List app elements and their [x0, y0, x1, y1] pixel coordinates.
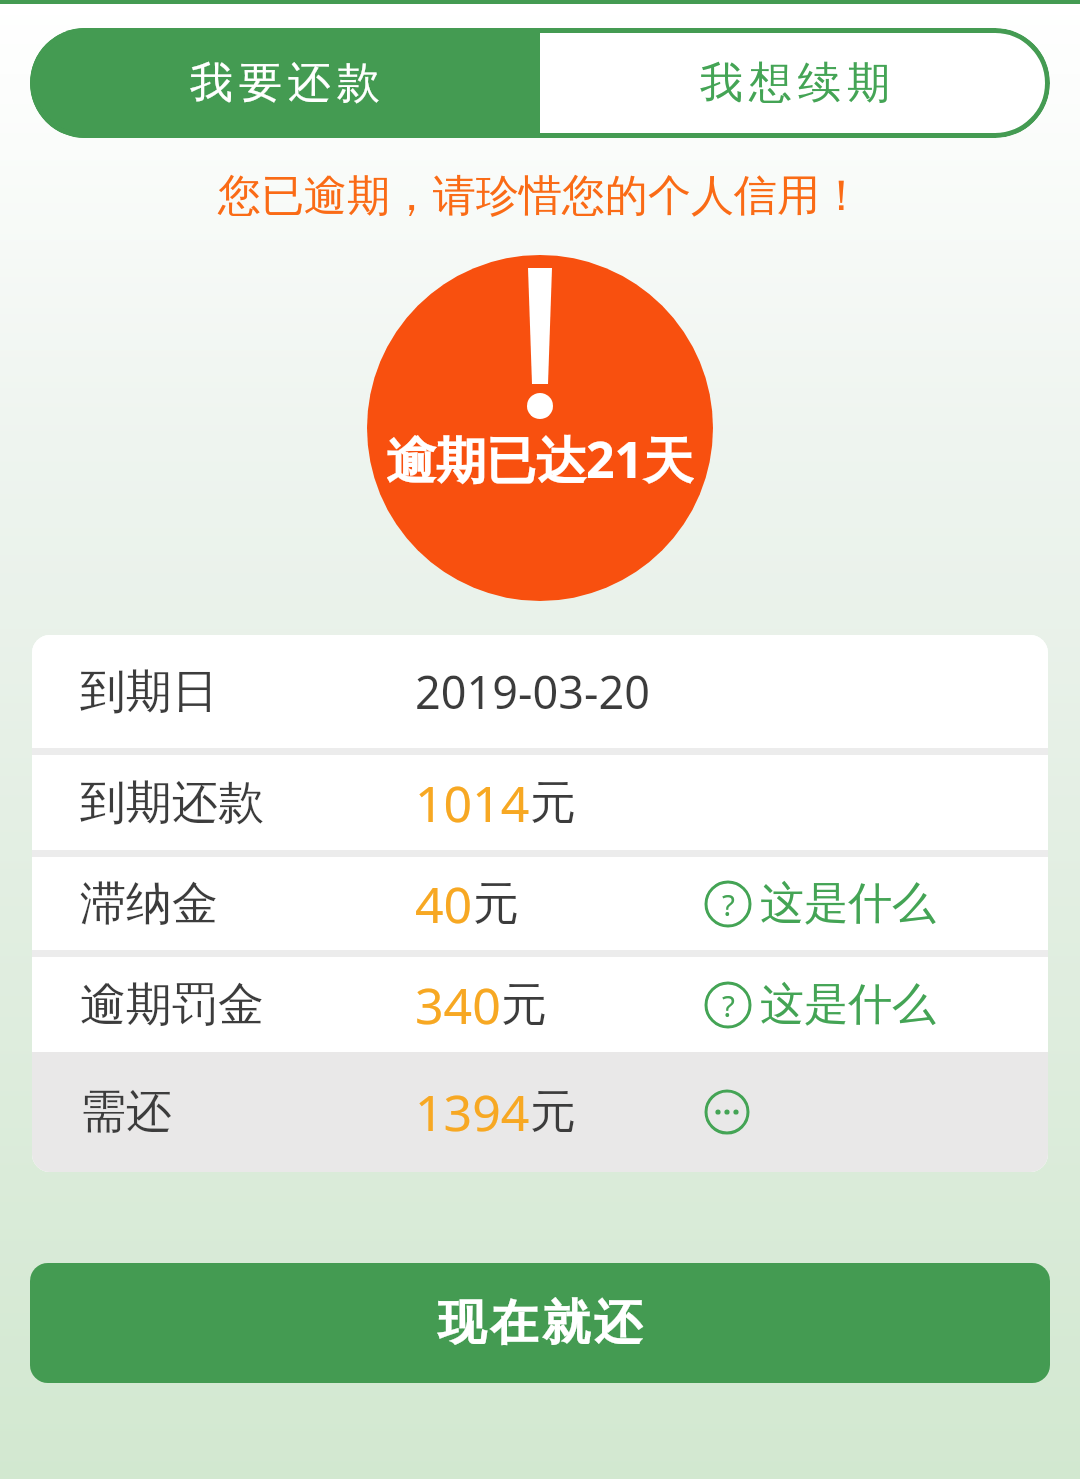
staticText: 我要还款 — [187, 56, 383, 110]
staticText: 您已逾期，请珍惜您的个人信用！ — [218, 169, 863, 223]
button[interactable]: 现在就还 — [30, 1263, 1050, 1383]
button[interactable]: 我要还款 — [30, 28, 540, 138]
staticText: ? — [722, 884, 735, 925]
staticText: 逾期已达21天 — [386, 425, 694, 485]
staticText: 这是什么 — [760, 977, 936, 1032]
staticText: 340 — [415, 971, 501, 1039]
staticText: 滞纳金 — [80, 875, 218, 933]
staticText: ? — [722, 985, 735, 1026]
staticText: 我想续期 — [697, 56, 893, 110]
button[interactable] — [704, 1089, 750, 1135]
button[interactable]: ? — [704, 977, 936, 1032]
staticText: 现在就还 — [436, 1293, 644, 1353]
button[interactable]: 我想续期 — [540, 28, 1050, 138]
button[interactable]: ? — [704, 876, 936, 931]
staticText: 到期日 — [80, 663, 218, 721]
staticText: 1014 — [415, 769, 530, 837]
staticText: 需还 — [80, 1083, 172, 1141]
staticText: 1394 — [415, 1078, 530, 1146]
staticText: 元 — [530, 1083, 576, 1141]
staticText: 元 — [473, 875, 519, 933]
staticText: 40 — [415, 870, 473, 938]
staticText: 这是什么 — [760, 876, 936, 931]
staticText: 2019-03-20 — [415, 661, 650, 722]
staticText: 元 — [501, 976, 547, 1034]
staticText: 逾期罚金 — [80, 976, 264, 1034]
staticText: 元 — [530, 774, 576, 832]
staticText: 到期还款 — [80, 774, 264, 832]
